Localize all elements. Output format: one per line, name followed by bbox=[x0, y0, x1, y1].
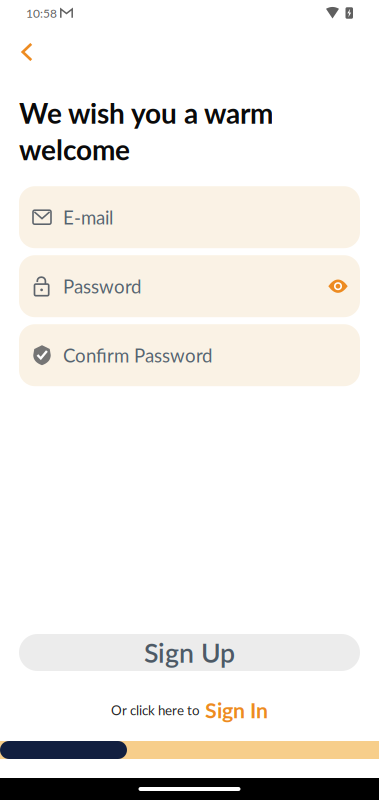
staticText: Or click here to bbox=[111, 702, 200, 718]
button[interactable]: Or click here to bbox=[111, 700, 268, 720]
staticText: 10:58 bbox=[26, 6, 57, 20]
staticText: Confirm Password bbox=[63, 344, 212, 366]
staticText: Sign Up bbox=[144, 636, 235, 668]
staticText: welcome bbox=[19, 133, 130, 166]
button[interactable]: Password bbox=[19, 255, 360, 317]
staticText: We wish you a warm bbox=[19, 96, 273, 130]
button[interactable]: Confirm Password bbox=[19, 324, 360, 386]
button[interactable]: Sign Up bbox=[19, 634, 360, 671]
button[interactable]: Back bbox=[11, 35, 43, 69]
staticText: Sign In bbox=[205, 697, 268, 723]
staticText: E-mail bbox=[63, 206, 113, 228]
staticText: Password bbox=[63, 275, 141, 297]
button[interactable]: E-mail bbox=[19, 186, 360, 248]
